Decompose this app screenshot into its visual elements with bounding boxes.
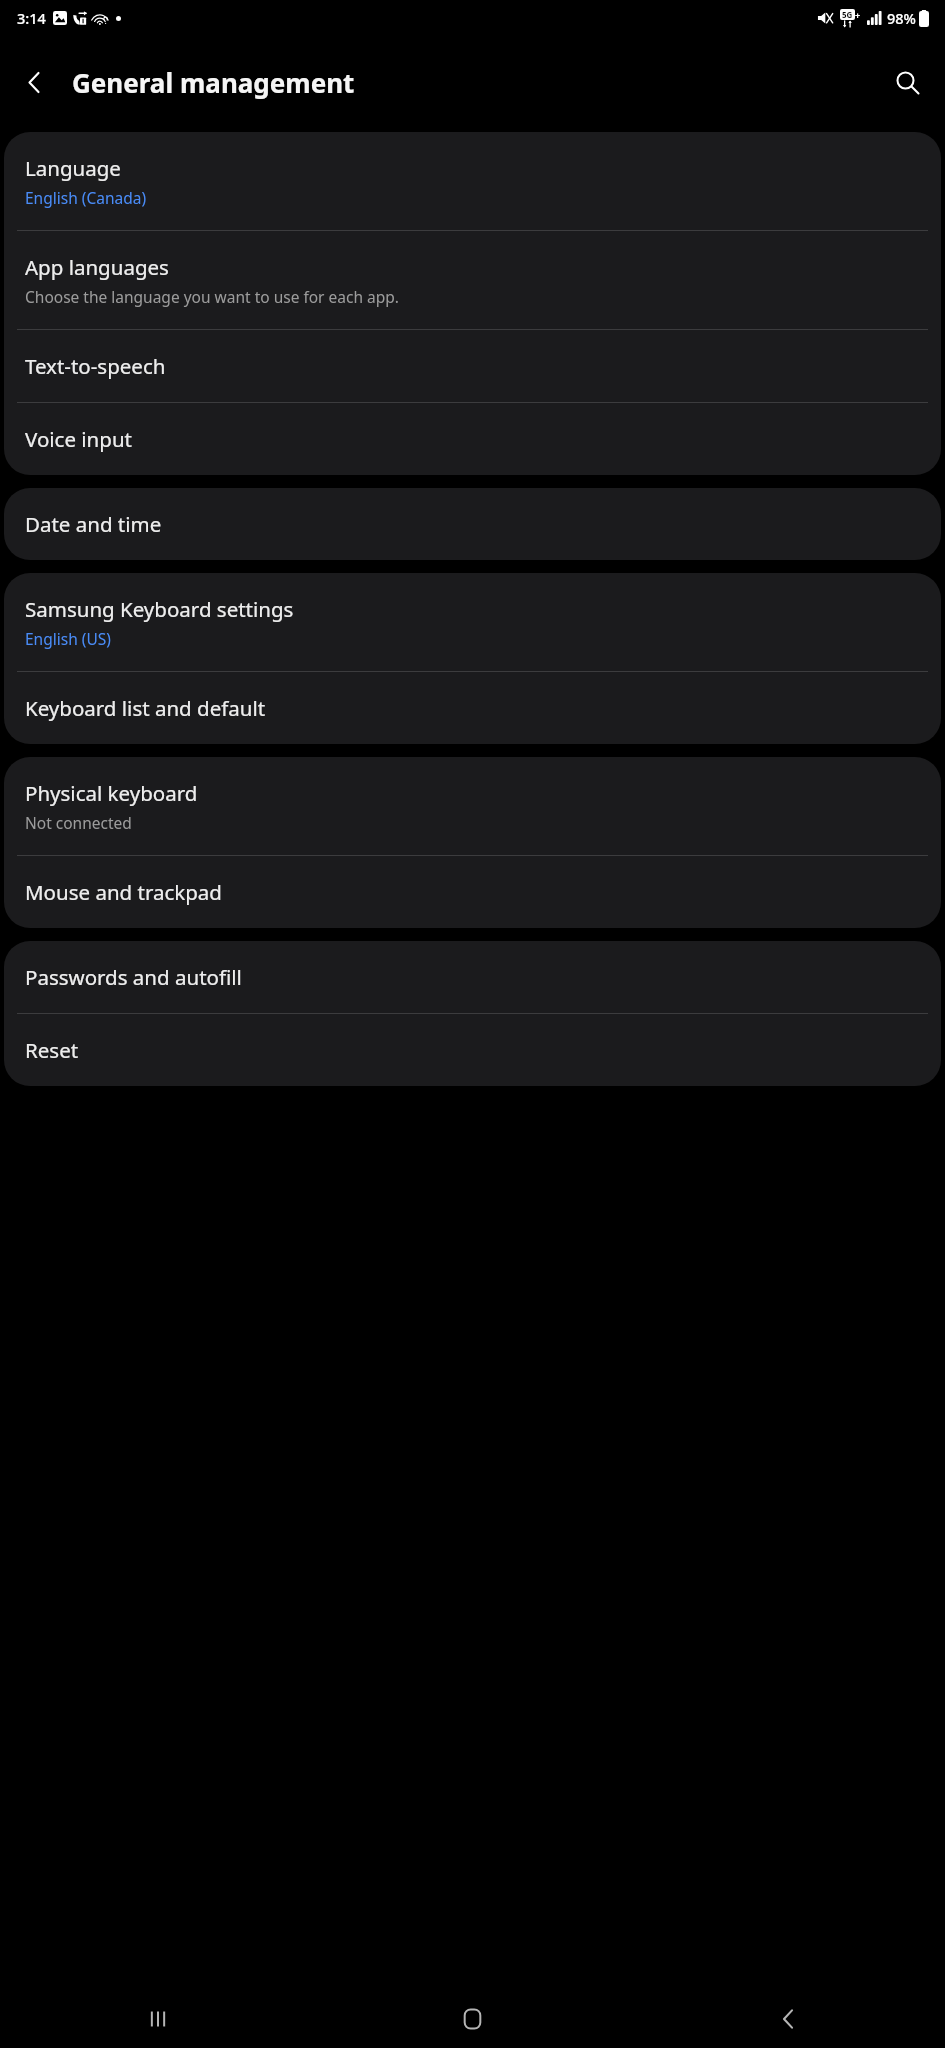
staticText: 3:14 [17,8,46,28]
button[interactable]: Date and time [4,488,941,560]
button[interactable]: Home [315,1990,630,2048]
staticText: Reset [25,1036,79,1064]
button[interactable]: Search [879,54,935,110]
staticText: Language [25,154,121,182]
staticText: Mouse and trackpad [25,878,222,906]
staticText: Samsung Keyboard settings [25,595,294,623]
button[interactable]: Language [4,132,941,230]
staticText: Text-to-speech [25,352,166,380]
staticText: 5G [842,9,853,20]
button[interactable]: Text-to-speech [4,330,941,402]
button[interactable]: Keyboard list and default [4,672,941,744]
staticText: Not connected [25,812,132,833]
button[interactable]: Back [630,1990,945,2048]
staticText: Voice input [25,425,132,453]
button[interactable]: Passwords and autofill [4,941,941,1013]
button[interactable]: Recent apps [0,1990,315,2048]
button[interactable]: Voice input [4,403,941,475]
staticText: Passwords and autofill [25,963,242,991]
staticText: Date and time [25,510,162,538]
button[interactable]: App languages [4,231,941,329]
staticText: English (US) [25,628,111,649]
button[interactable]: Samsung Keyboard settings [4,573,941,671]
staticText: English (Canada) [25,187,147,208]
staticText: + [855,9,861,21]
button[interactable]: Reset [4,1014,941,1086]
staticText: Keyboard list and default [25,694,266,722]
button[interactable]: Back [6,54,62,110]
button[interactable]: Mouse and trackpad [4,856,941,928]
staticText: Choose the language you want to use for … [25,286,399,307]
staticText: General management [72,65,355,100]
button[interactable]: Physical keyboard [4,757,941,855]
staticText: Physical keyboard [25,779,198,807]
staticText: App languages [25,253,169,281]
staticText: 98% [887,8,916,28]
